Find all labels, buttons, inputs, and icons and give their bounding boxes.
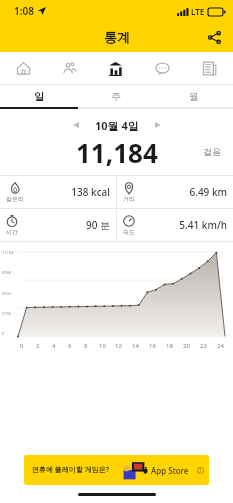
- staticText: 6.49 km: [135, 185, 227, 199]
- staticText: 4: [52, 342, 56, 350]
- staticText: 1:08: [14, 4, 34, 18]
- staticText: 주: [111, 90, 121, 103]
- staticText: 2: [36, 342, 40, 350]
- staticText: 거리: [123, 195, 135, 203]
- button[interactable]: Home: [0, 52, 46, 84]
- staticText: 22: [200, 342, 207, 350]
- button[interactable]: News: [186, 52, 233, 84]
- staticText: 5.41 km/h: [135, 218, 227, 232]
- button[interactable]: Next day: [149, 116, 167, 134]
- staticText: 0: [20, 342, 24, 350]
- staticText: 138 kcal: [24, 185, 110, 199]
- button[interactable]: Share: [203, 26, 225, 48]
- staticText: 5592: [2, 291, 12, 296]
- button[interactable]: 거리: [117, 176, 233, 208]
- staticText: 칼로리: [6, 195, 24, 203]
- button[interactable]: Friends: [46, 52, 92, 84]
- staticText: 2796: [2, 311, 12, 316]
- button[interactable]: 속도: [117, 209, 233, 241]
- staticText: 통계: [104, 29, 130, 45]
- staticText: 10월 4일: [95, 118, 139, 133]
- staticText: LTE: [191, 6, 205, 17]
- staticText: 8: [84, 342, 88, 350]
- staticText: 12: [115, 342, 122, 350]
- staticText: 14: [132, 342, 139, 350]
- staticText: 월: [189, 90, 199, 103]
- staticText: i: [200, 467, 202, 474]
- staticText: 연휴에 플레이할 게임은?: [32, 465, 109, 475]
- staticText: 6: [68, 342, 72, 350]
- staticText: 20: [183, 342, 190, 350]
- button[interactable]: 주: [77, 85, 155, 107]
- staticText: 8388: [2, 270, 12, 275]
- staticText: 90 분: [18, 218, 110, 232]
- button[interactable]: Stats: [92, 52, 139, 84]
- staticText: 속도: [123, 228, 135, 236]
- button[interactable]: Previous day: [67, 116, 85, 134]
- button[interactable]: 연휴에 플레이할 게임은?: [24, 455, 209, 485]
- staticText: 걸음: [203, 146, 221, 157]
- button[interactable]: 칼로리: [0, 176, 116, 208]
- staticText: 0: [2, 331, 5, 336]
- other: Ad info: [197, 467, 204, 474]
- staticText: 16: [149, 342, 156, 350]
- staticText: 11184: [2, 250, 14, 255]
- staticText: 24: [217, 342, 224, 350]
- staticText: 11,184: [76, 135, 158, 167]
- button[interactable]: 시간: [0, 209, 116, 241]
- staticText: 10: [99, 342, 106, 350]
- staticText: 시간: [6, 228, 18, 236]
- button[interactable]: 일: [0, 85, 77, 107]
- staticText: 18: [166, 342, 173, 350]
- button[interactable]: 월: [155, 85, 233, 107]
- staticText: 일: [34, 90, 44, 103]
- staticText: App Store: [151, 465, 189, 476]
- button[interactable]: Chat: [139, 52, 186, 84]
